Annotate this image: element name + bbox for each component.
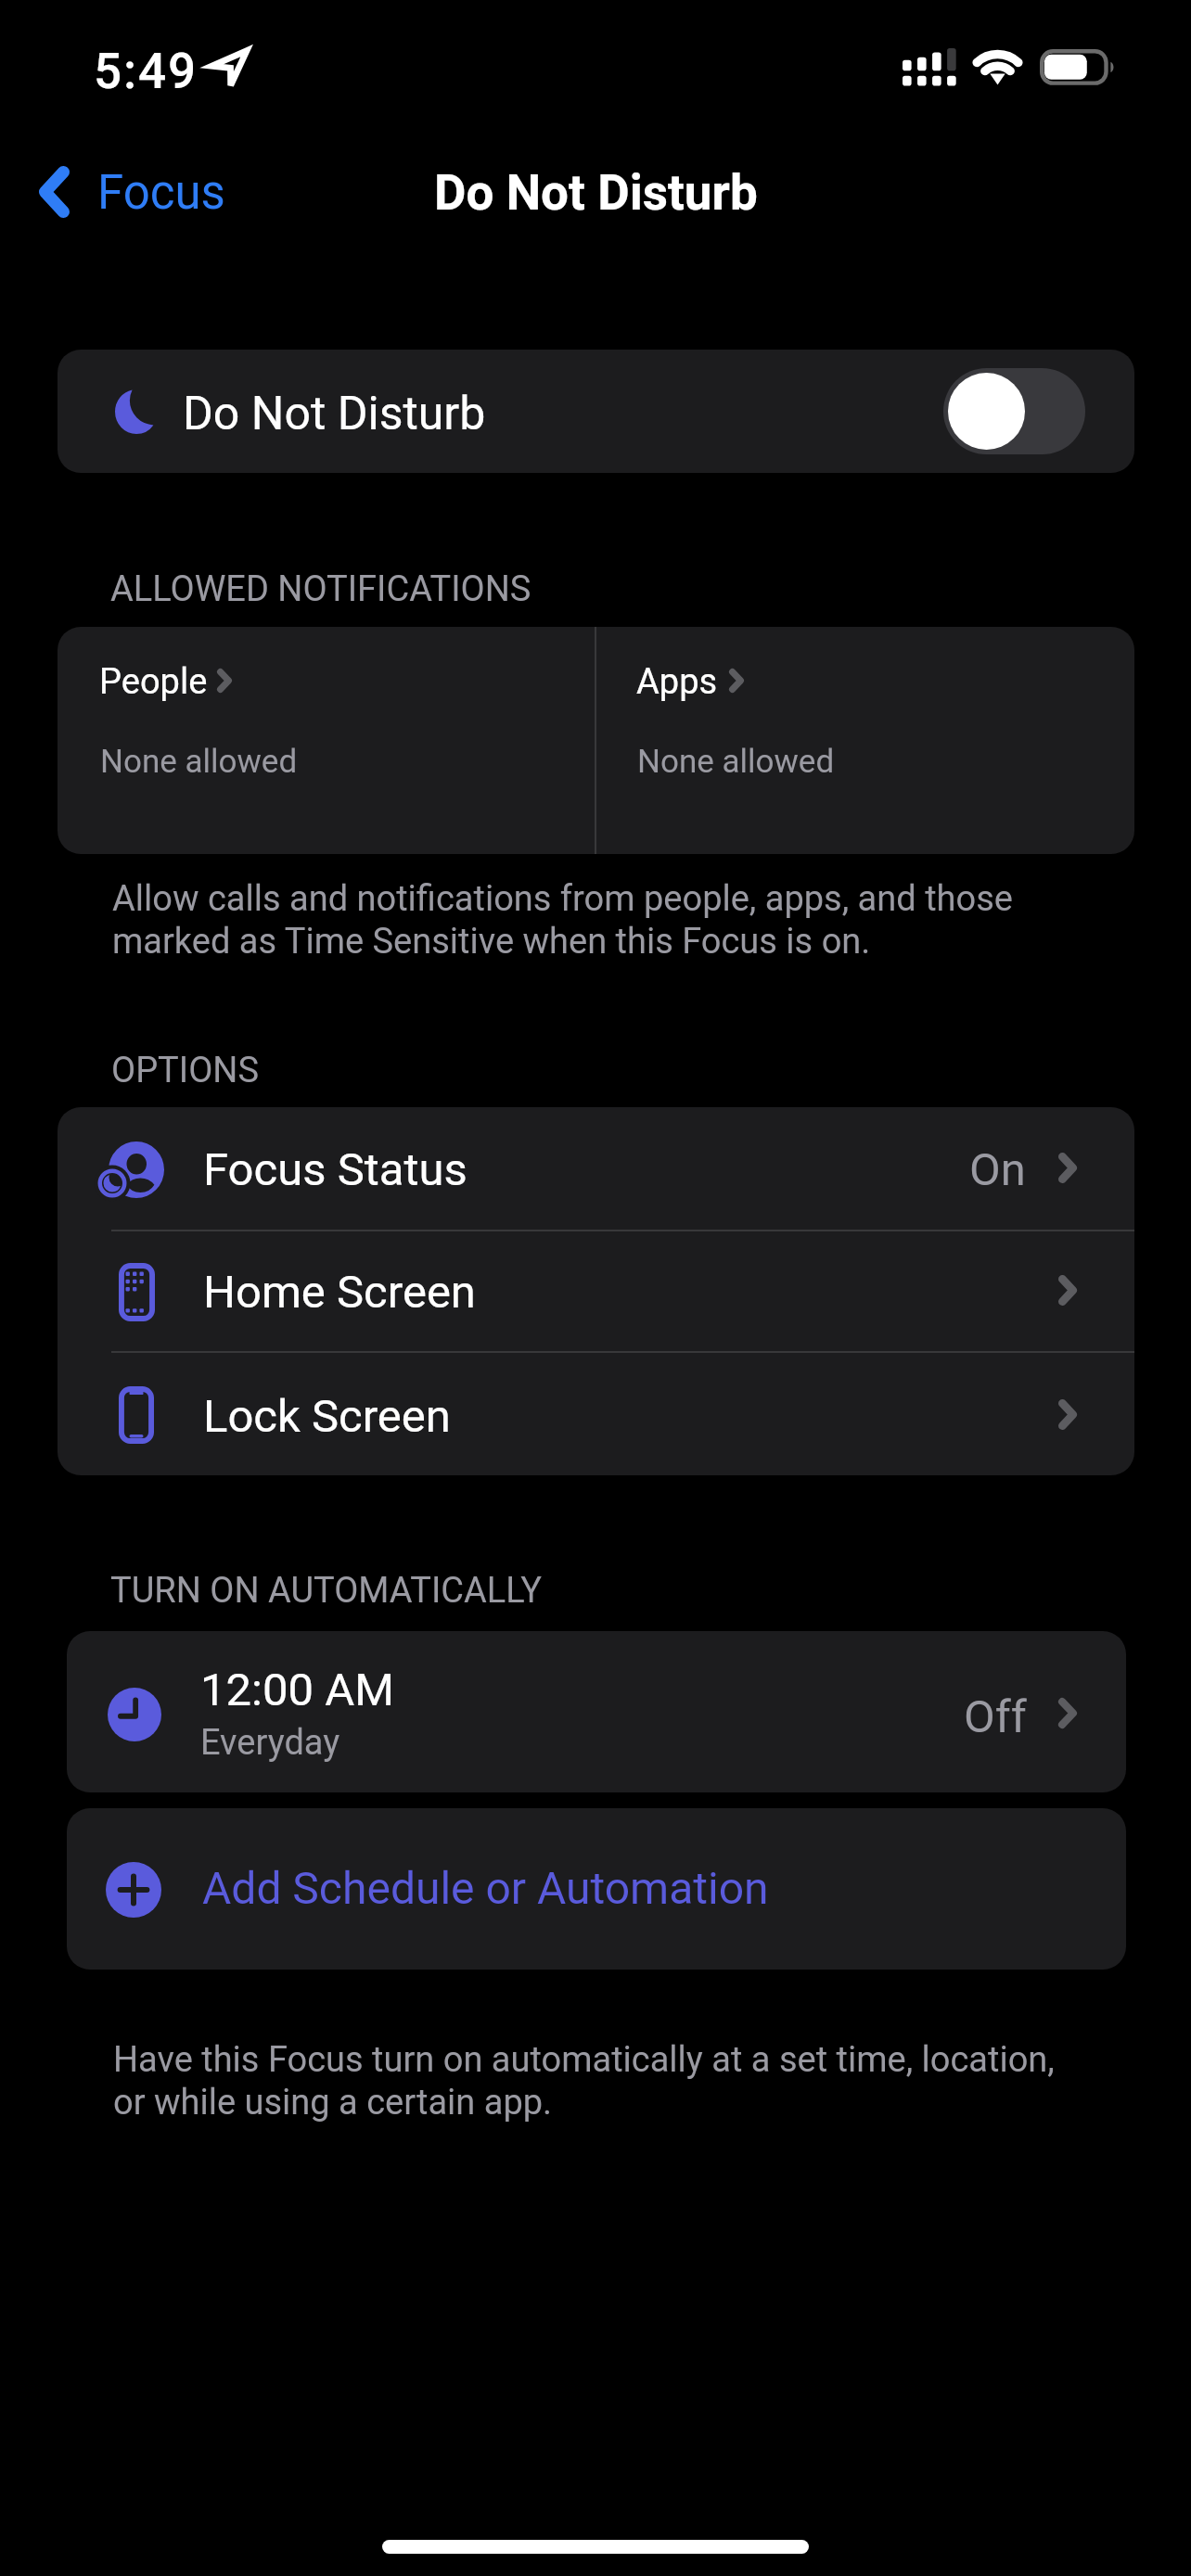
other: Location in use: [208, 46, 250, 89]
staticText: Focus Status: [203, 1143, 467, 1196]
button[interactable]: 12:00 AM: [67, 1631, 1126, 1792]
button[interactable]: People: [58, 627, 595, 854]
button[interactable]: Apps: [595, 627, 1134, 854]
staticText: Allow calls and notifications from peopl…: [112, 878, 1049, 963]
staticText: Home Screen: [203, 1266, 476, 1319]
staticText: Have this Focus turn on automatically at…: [113, 2039, 1087, 2123]
button[interactable]: Add Schedule or Automation: [67, 1808, 1126, 1970]
staticText: OPTIONS: [111, 1050, 259, 1091]
staticText: 12:00 AM: [200, 1664, 394, 1716]
staticText: People: [99, 661, 208, 703]
button[interactable]: Do Not Disturb: [58, 350, 1134, 473]
staticText: Apps: [636, 661, 718, 703]
staticText: ALLOWED NOTIFICATIONS: [110, 568, 531, 610]
staticText: Do Not Disturb: [434, 164, 758, 222]
staticText: On: [969, 1143, 1026, 1196]
staticText: None allowed: [637, 743, 835, 781]
staticText: Everyday: [200, 1722, 340, 1764]
staticText: Focus: [97, 165, 225, 221]
button[interactable]: Focus Status: [58, 1107, 1134, 1230]
staticText: Off: [964, 1690, 1027, 1743]
staticText: Do Not Disturb: [183, 387, 486, 441]
button[interactable]: Home Screen: [58, 1230, 1134, 1352]
button[interactable]: Do Not Disturb toggle, off: [943, 368, 1085, 454]
staticText: None allowed: [100, 743, 298, 781]
staticText: 5:49: [94, 43, 198, 100]
staticText: TURN ON AUTOMATICALLY: [110, 1570, 543, 1612]
button[interactable]: Focus: [22, 150, 239, 234]
button[interactable]: Lock Screen: [58, 1354, 1134, 1475]
staticText: Lock Screen: [203, 1390, 451, 1443]
staticText: Add Schedule or Automation: [202, 1862, 769, 1914]
